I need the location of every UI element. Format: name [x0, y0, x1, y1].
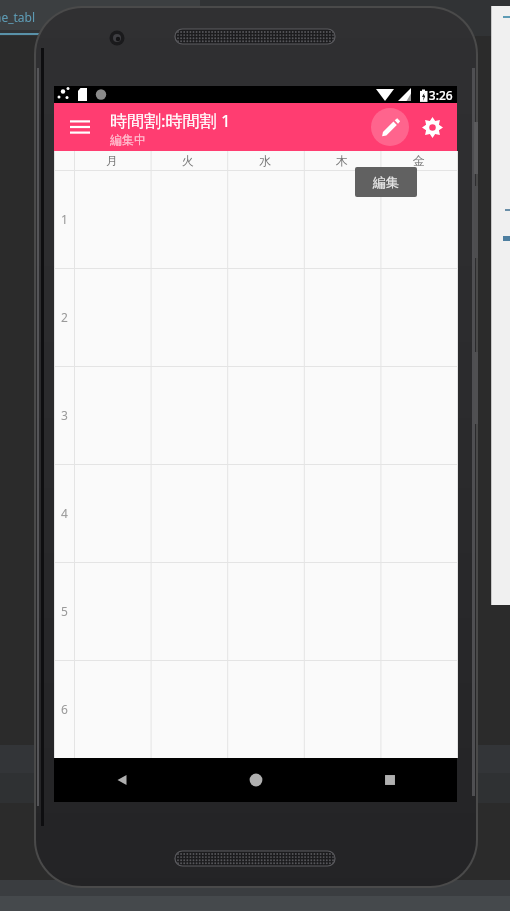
- button[interactable]: [74, 660, 150, 758]
- staticText: 13:26: [422, 87, 453, 103]
- button[interactable]: [226, 366, 303, 464]
- staticText: 時間割:時間割 1: [110, 109, 231, 132]
- staticText: 月: [106, 153, 118, 168]
- staticText: 2: [61, 309, 68, 325]
- button[interactable]: Home: [189, 758, 323, 802]
- button[interactable]: [303, 268, 380, 366]
- staticText: 編集: [373, 174, 399, 190]
- button[interactable]: [226, 170, 303, 268]
- staticText: 編集中: [110, 132, 146, 147]
- button[interactable]: [303, 464, 380, 562]
- button[interactable]: [74, 366, 150, 464]
- staticText: ne_tabl: [0, 9, 36, 25]
- button[interactable]: [226, 562, 303, 660]
- button[interactable]: Recent apps: [323, 758, 457, 802]
- button[interactable]: [303, 170, 380, 268]
- button[interactable]: [54, 151, 457, 758]
- button[interactable]: Settings: [413, 108, 451, 146]
- button[interactable]: [303, 562, 380, 660]
- button[interactable]: [226, 268, 303, 366]
- button[interactable]: [74, 562, 150, 660]
- staticText: 4: [61, 505, 68, 521]
- staticText: 1: [61, 211, 68, 227]
- button[interactable]: Open navigation drawer: [62, 109, 98, 145]
- button[interactable]: [380, 170, 457, 268]
- staticText: 5: [61, 603, 68, 619]
- button[interactable]: [226, 660, 303, 758]
- button[interactable]: Back: [54, 758, 189, 802]
- button[interactable]: Edit: [371, 108, 409, 146]
- button[interactable]: [74, 268, 150, 366]
- staticText: 3: [61, 407, 68, 423]
- staticText: 6: [61, 701, 68, 717]
- staticText: 火: [182, 153, 194, 168]
- button[interactable]: [74, 170, 150, 268]
- button[interactable]: [74, 464, 150, 562]
- button[interactable]: [303, 366, 380, 464]
- button[interactable]: [303, 660, 380, 758]
- staticText: 木: [336, 153, 348, 168]
- staticText: 金: [413, 153, 425, 168]
- button[interactable]: [226, 464, 303, 562]
- staticText: 水: [259, 153, 271, 168]
